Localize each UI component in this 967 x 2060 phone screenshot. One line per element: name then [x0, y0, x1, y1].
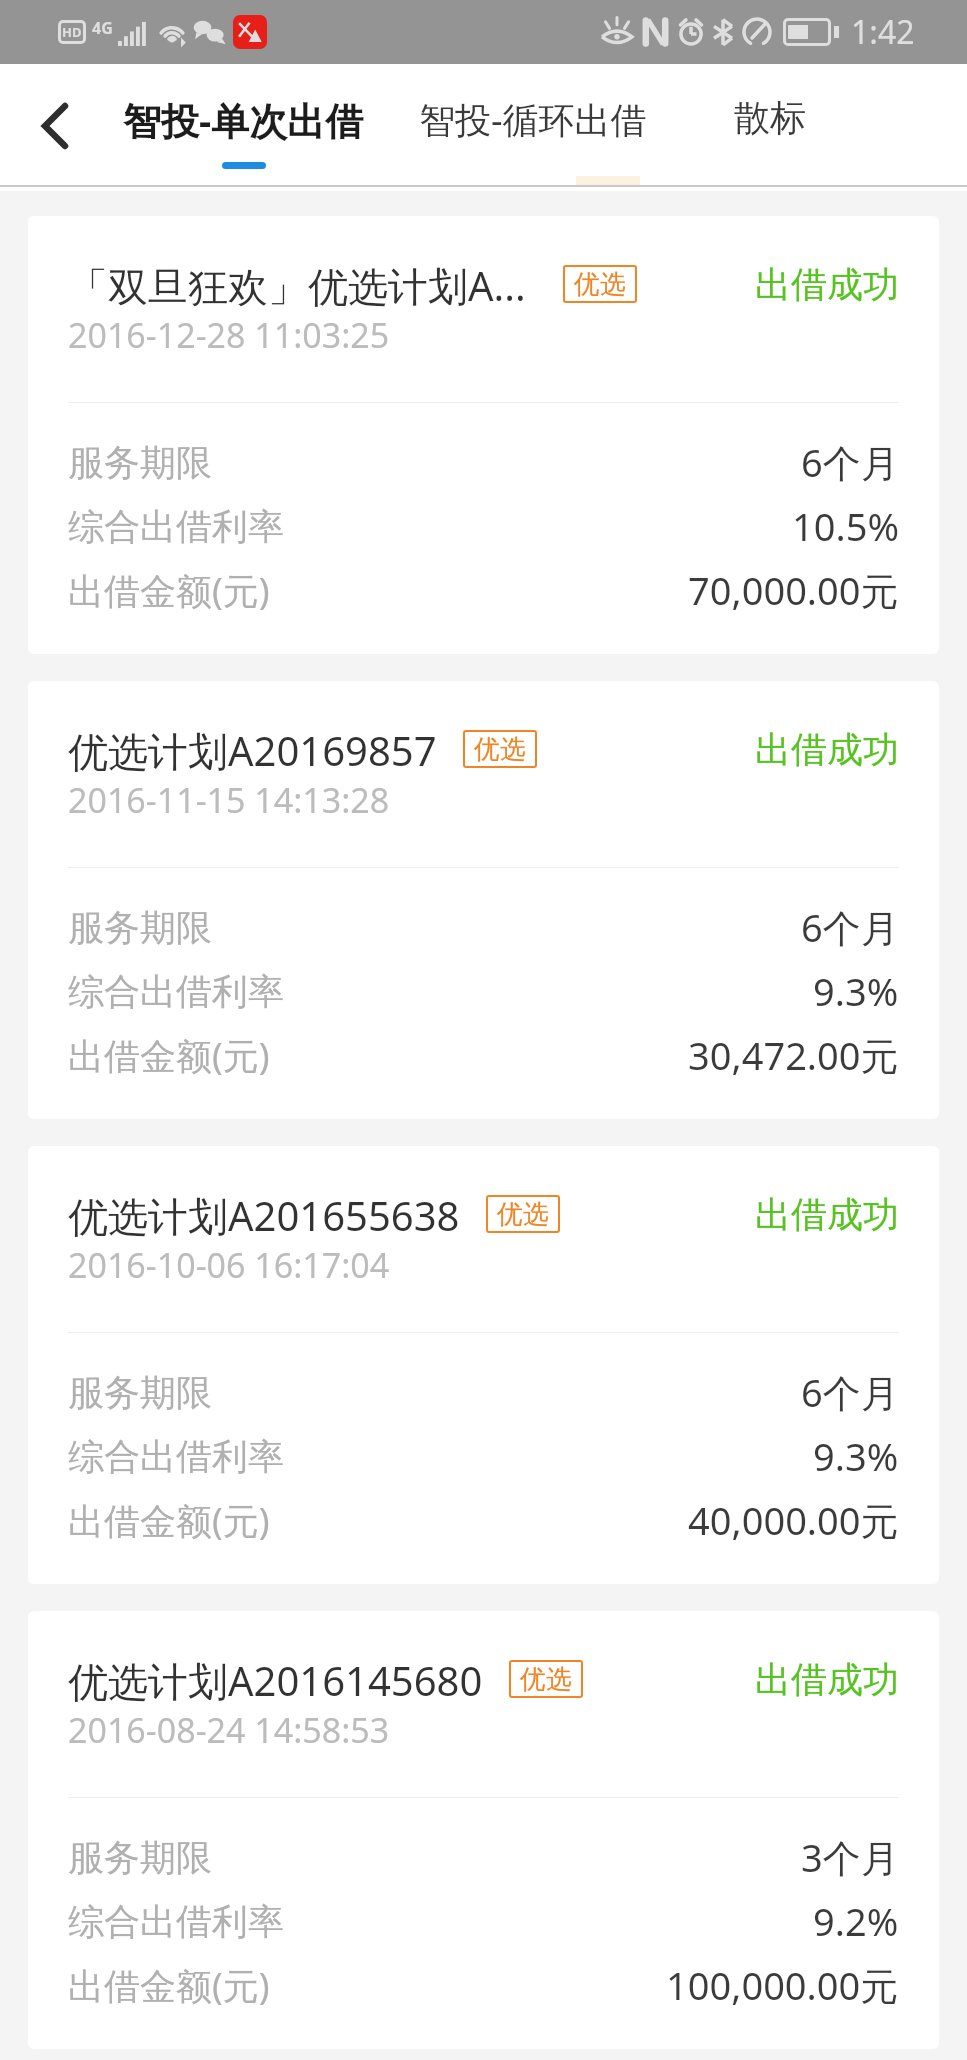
staticText: 出借金额(元) [68, 1031, 270, 1080]
button[interactable]: Back [13, 84, 97, 168]
staticText: 2016-12-28 11:03:25 [68, 312, 390, 358]
button[interactable]: 优选计划A2016145680 [28, 1611, 939, 2049]
staticText: 2016-08-24 14:58:53 [68, 1707, 390, 1753]
staticText: 10.5% [792, 500, 899, 552]
staticText: 「双旦狂欢」优选计划A... [68, 258, 537, 310]
button[interactable]: 「双旦狂欢」优选计划A... [28, 216, 939, 654]
staticText: 优选计划A2016145680 [68, 1653, 483, 1705]
staticText: 出借成功 [755, 1192, 899, 1237]
button[interactable]: 智投-循环出借 [413, 64, 653, 187]
staticText: 100,000.00元 [666, 1959, 899, 2011]
button[interactable]: 优选计划A201655638 [28, 1146, 939, 1584]
staticText: 服务期限 [68, 1835, 212, 1880]
staticText: 出借金额(元) [68, 1496, 270, 1545]
staticText: 9.3% [813, 1430, 899, 1482]
staticText: 智投-循环出借 [419, 95, 647, 144]
staticText: 优选 [574, 268, 626, 301]
staticText: 出借金额(元) [68, 566, 270, 615]
staticText: 服务期限 [68, 905, 212, 950]
button[interactable]: 优选计划A20169857 [28, 681, 939, 1119]
staticText: 智投-单次出借 [123, 94, 364, 146]
staticText: 40,000.00元 [688, 1494, 899, 1546]
staticText: 6个月 [801, 901, 899, 953]
staticText: 3个月 [801, 1831, 899, 1883]
button[interactable]: 散标 [690, 64, 850, 187]
staticText: 散标 [734, 95, 806, 140]
staticText: 4G [92, 17, 113, 39]
staticText: 6个月 [801, 436, 899, 488]
staticText: 服务期限 [68, 440, 212, 485]
staticText: 优选计划A201655638 [68, 1188, 460, 1240]
button[interactable]: 智投-单次出借 [113, 64, 373, 187]
staticText: 30,472.00元 [688, 1029, 899, 1081]
staticText: 出借成功 [755, 1657, 899, 1702]
staticText: 综合出借利率 [68, 969, 284, 1014]
staticText: 2016-10-06 16:17:04 [68, 1242, 390, 1288]
staticText: 6个月 [801, 1366, 899, 1418]
staticText: 9.3% [813, 965, 899, 1017]
staticText: 9.2% [813, 1895, 899, 1947]
staticText: 优选计划A20169857 [68, 723, 437, 775]
staticText: HD [62, 23, 82, 41]
staticText: 综合出借利率 [68, 1899, 284, 1944]
staticText: 服务期限 [68, 1370, 212, 1415]
staticText: 出借成功 [755, 727, 899, 772]
staticText: 优选 [520, 1663, 572, 1696]
staticText: 出借成功 [755, 262, 899, 307]
staticText: 70,000.00元 [688, 564, 899, 616]
staticText: 2016-11-15 14:13:28 [68, 777, 390, 823]
staticText: 出借金额(元) [68, 1961, 270, 2010]
staticText: 综合出借利率 [68, 1434, 284, 1479]
staticText: 优选 [474, 733, 526, 766]
staticText: 综合出借利率 [68, 504, 284, 549]
staticText: 优选 [497, 1198, 549, 1231]
staticText: 1:42 [851, 10, 915, 54]
